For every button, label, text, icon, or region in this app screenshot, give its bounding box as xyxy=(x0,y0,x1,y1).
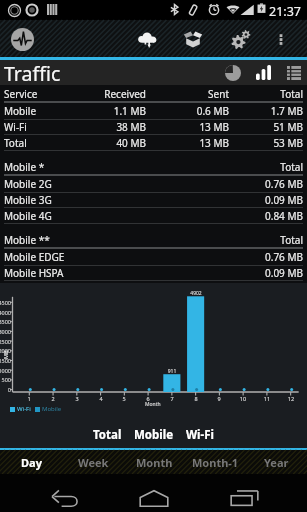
staticText: 9 xyxy=(213,395,225,402)
staticText: Total xyxy=(229,160,303,174)
staticText: 4500 xyxy=(0,299,11,306)
staticText: 0.09 MB xyxy=(229,193,303,207)
button[interactable]: More options xyxy=(268,26,294,52)
button[interactable]: Settings xyxy=(224,23,256,55)
button[interactable]: Service xyxy=(0,87,307,101)
staticText: Total xyxy=(4,136,78,150)
button[interactable]: Mobile 4G xyxy=(0,209,307,223)
staticText: 12 xyxy=(285,395,297,402)
staticText: 1.1 MB xyxy=(78,104,146,118)
staticText: Mobile xyxy=(4,104,78,118)
button[interactable]: Wi-Fi xyxy=(0,120,307,134)
staticText: 11 xyxy=(261,395,273,402)
staticText: 5 xyxy=(118,395,130,402)
staticText: 3500 xyxy=(0,318,11,325)
button[interactable]: Month-1 xyxy=(185,450,246,474)
staticText: 1500 xyxy=(0,357,11,364)
staticText: 0.09 MB xyxy=(229,266,303,280)
staticText: Service xyxy=(4,87,78,101)
staticText: Mobile xyxy=(42,405,62,413)
button[interactable]: Mobile * xyxy=(0,160,307,174)
staticText: Wi-Fi xyxy=(17,405,31,413)
button[interactable]: Mobile EDGE xyxy=(0,250,307,264)
button[interactable]: Month xyxy=(124,450,185,474)
button[interactable]: Pie chart view xyxy=(220,60,245,85)
staticText: Month xyxy=(145,401,161,408)
staticText: Total xyxy=(229,87,303,101)
staticText: Traffic xyxy=(4,60,61,85)
button[interactable]: Mobile 3G xyxy=(0,193,307,207)
staticText: Sent xyxy=(146,87,229,101)
staticText: 3 xyxy=(71,395,83,402)
staticText: Mobile xyxy=(134,427,174,443)
staticText: 7 xyxy=(166,395,178,402)
staticText: 13 MB xyxy=(146,120,229,134)
button[interactable]: Mobile ** xyxy=(0,233,307,247)
staticText: 2500 xyxy=(0,338,11,345)
staticText: 4902 xyxy=(187,290,205,297)
staticText: 3000 xyxy=(0,328,11,335)
staticText: Month-1 xyxy=(192,455,239,470)
staticText: Day xyxy=(21,455,42,470)
button[interactable]: Back xyxy=(42,479,86,512)
staticText: 2000 xyxy=(0,347,11,354)
staticText: 51 MB xyxy=(229,120,303,134)
staticText: Mobile 4G xyxy=(4,209,78,223)
staticText: 0.76 MB xyxy=(229,250,303,264)
staticText: 2 xyxy=(47,395,59,402)
staticText: 4 xyxy=(95,395,107,402)
staticText: MB xyxy=(2,350,9,359)
staticText: 0.84 MB xyxy=(229,209,303,223)
button[interactable]: Home xyxy=(132,479,176,512)
button[interactable]: Mobile 2G xyxy=(0,177,307,191)
staticText: 1000 xyxy=(0,367,11,374)
button[interactable]: Mobile HSPA xyxy=(0,266,307,280)
staticText: Mobile 3G xyxy=(4,193,78,207)
staticText: Mobile EDGE xyxy=(4,250,78,264)
button[interactable]: Mobile xyxy=(128,422,180,448)
staticText: 6 xyxy=(142,395,154,402)
staticText: 0.76 MB xyxy=(229,177,303,191)
staticText: Received xyxy=(78,87,146,101)
button[interactable]: Recent apps xyxy=(222,479,266,512)
staticText: 10 xyxy=(237,395,249,402)
button[interactable]: Wi-Fi xyxy=(180,422,220,448)
staticText: 4000 xyxy=(0,309,11,316)
staticText: 1.7 MB xyxy=(229,104,303,118)
button[interactable]: Week xyxy=(62,450,124,474)
staticText: Mobile * xyxy=(4,160,78,174)
button[interactable]: Year xyxy=(246,450,307,474)
button[interactable]: Applications xyxy=(177,23,209,55)
staticText: 38 MB xyxy=(78,120,146,134)
button[interactable]: Mobile xyxy=(0,104,307,118)
button[interactable]: Day xyxy=(0,450,62,474)
button[interactable]: Total xyxy=(0,136,307,150)
staticText: Week xyxy=(78,455,109,470)
button[interactable]: App xyxy=(8,25,36,53)
button[interactable]: Sync xyxy=(131,23,163,55)
button[interactable]: Bar chart view xyxy=(251,60,276,85)
staticText: 21:37 xyxy=(269,3,301,20)
staticText: 500 xyxy=(0,376,11,383)
staticText: 0 xyxy=(0,386,11,393)
button[interactable]: Total xyxy=(87,422,128,448)
staticText: Wi-Fi xyxy=(4,120,78,134)
staticText: 1 xyxy=(23,395,35,402)
button[interactable]: List view xyxy=(281,60,306,85)
staticText: 53 MB xyxy=(229,136,303,150)
staticText: 40 MB xyxy=(78,136,146,150)
staticText: Wi-Fi xyxy=(186,427,214,443)
